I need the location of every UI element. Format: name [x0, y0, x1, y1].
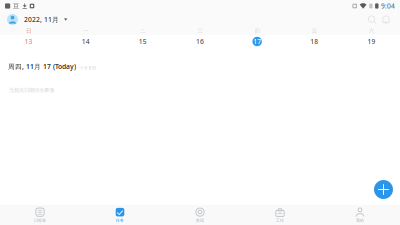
button[interactable]: 18	[286, 35, 343, 48]
staticText: 18	[310, 37, 318, 46]
staticText: 周四, 11月 17 (Today)	[8, 62, 76, 71]
staticText: 日程表	[34, 218, 46, 223]
button[interactable]: 13	[0, 35, 57, 48]
staticText: 工作	[276, 218, 284, 223]
staticText: 17	[253, 37, 261, 46]
staticText: 日	[26, 28, 31, 34]
staticText: 2022, 11月	[24, 15, 59, 24]
button[interactable]: 14	[57, 35, 114, 48]
button[interactable]: Search	[365, 12, 379, 26]
button[interactable]: Add	[374, 180, 393, 199]
staticText: 无相关日期待办事项	[9, 87, 54, 93]
button[interactable]: 我的	[320, 205, 400, 225]
button[interactable]: 17	[229, 35, 286, 48]
staticText: 9:04	[381, 2, 395, 10]
staticText: 发现	[196, 218, 204, 223]
staticText: 豆	[13, 2, 20, 10]
button[interactable]: 2022, 11月	[18, 15, 67, 24]
staticText: 四	[255, 28, 260, 34]
staticText: 十月廿四	[80, 65, 96, 70]
staticText: 任务	[116, 218, 124, 223]
button[interactable]: 19	[343, 35, 400, 48]
button[interactable]: 工作	[240, 205, 320, 225]
button[interactable]: Account	[7, 14, 18, 25]
button[interactable]: 日程表	[0, 205, 80, 225]
staticText: 一	[83, 28, 88, 34]
staticText: 五	[312, 28, 317, 34]
staticText: 15	[139, 37, 147, 46]
button[interactable]: 16	[171, 35, 228, 48]
button[interactable]: Notifications	[379, 12, 393, 26]
staticText: 二	[140, 28, 145, 34]
staticText: 我的	[356, 218, 364, 223]
staticText: 13	[25, 37, 33, 46]
staticText: 19	[367, 37, 375, 46]
staticText: 14	[82, 37, 90, 46]
staticText: 三	[197, 28, 202, 34]
button[interactable]: 发现	[160, 205, 240, 225]
staticText: 16	[196, 37, 204, 46]
button[interactable]: 任务	[80, 205, 160, 225]
staticText: 六	[369, 28, 374, 34]
button[interactable]: 15	[114, 35, 171, 48]
